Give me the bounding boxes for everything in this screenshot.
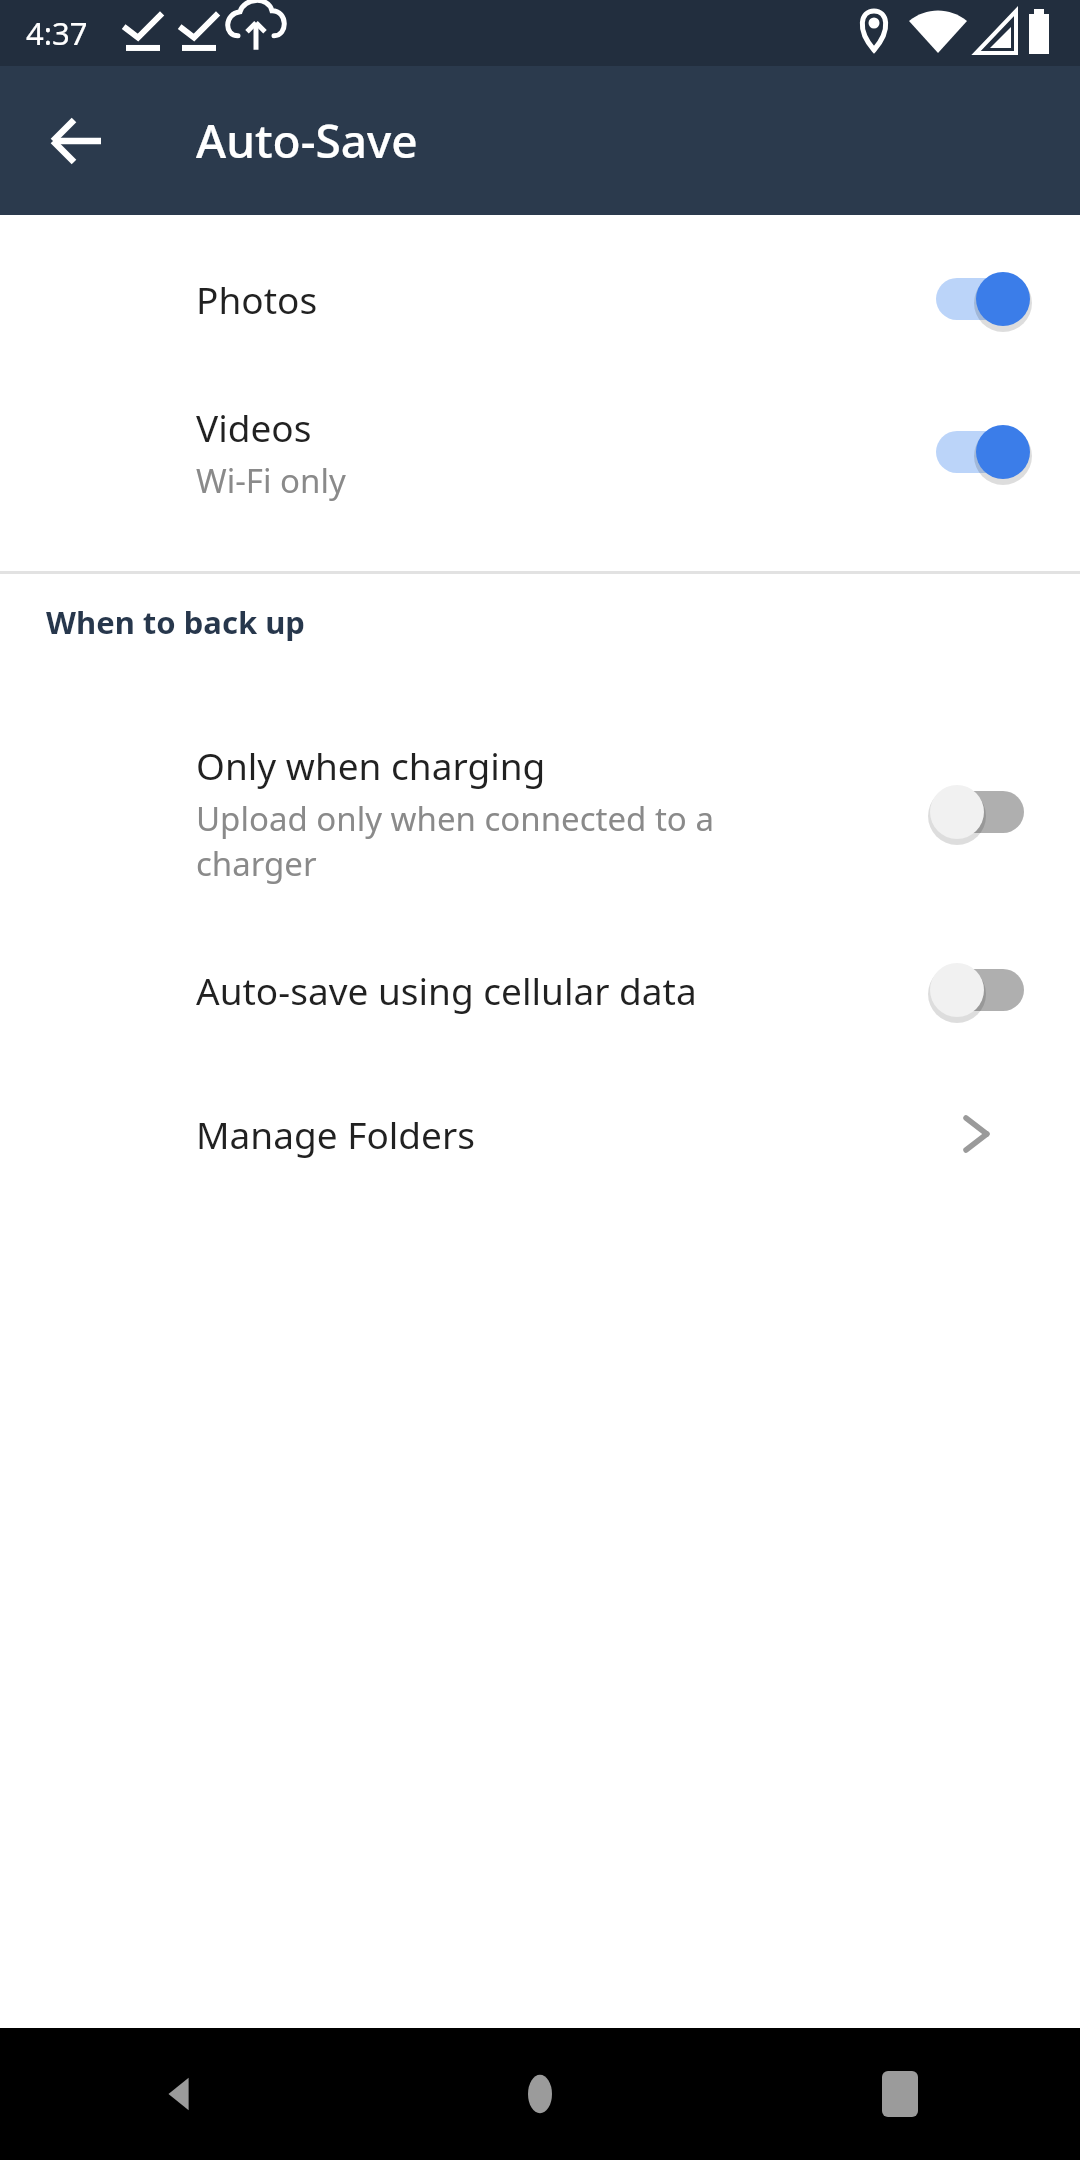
button[interactable]: Back (29, 93, 125, 189)
staticText: Videos (196, 402, 312, 452)
button[interactable]: Auto-save using cellular data (0, 936, 1080, 1044)
button[interactable]: Only when charging (0, 714, 1080, 900)
button[interactable]: Toggle off (922, 955, 1038, 1025)
button[interactable]: Recent apps (720, 2028, 1080, 2160)
button[interactable]: Toggle on (922, 417, 1038, 487)
button[interactable]: Photos (0, 215, 1080, 353)
button[interactable]: Home (360, 2028, 720, 2160)
staticText: When to back up (46, 601, 305, 643)
button[interactable]: Toggle on (922, 264, 1038, 334)
staticText: Auto-save using cellular data (196, 965, 697, 1015)
staticText: Upload only when connected to a charger (196, 796, 714, 885)
staticText: Manage Folders (196, 1109, 475, 1159)
button[interactable]: Toggle off (922, 777, 1038, 847)
button[interactable]: Back (0, 2028, 360, 2160)
button[interactable]: Videos (0, 353, 1080, 527)
staticText: Photos (196, 274, 318, 324)
staticText: Auto-Save (196, 109, 418, 172)
staticText: Only when charging (196, 740, 546, 790)
staticText: Wi-Fi only (196, 458, 346, 503)
staticText: 4:37 (26, 12, 88, 54)
button[interactable]: Manage Folders (0, 1080, 1080, 1188)
button[interactable]: Open Manage Folders (940, 1094, 1020, 1174)
